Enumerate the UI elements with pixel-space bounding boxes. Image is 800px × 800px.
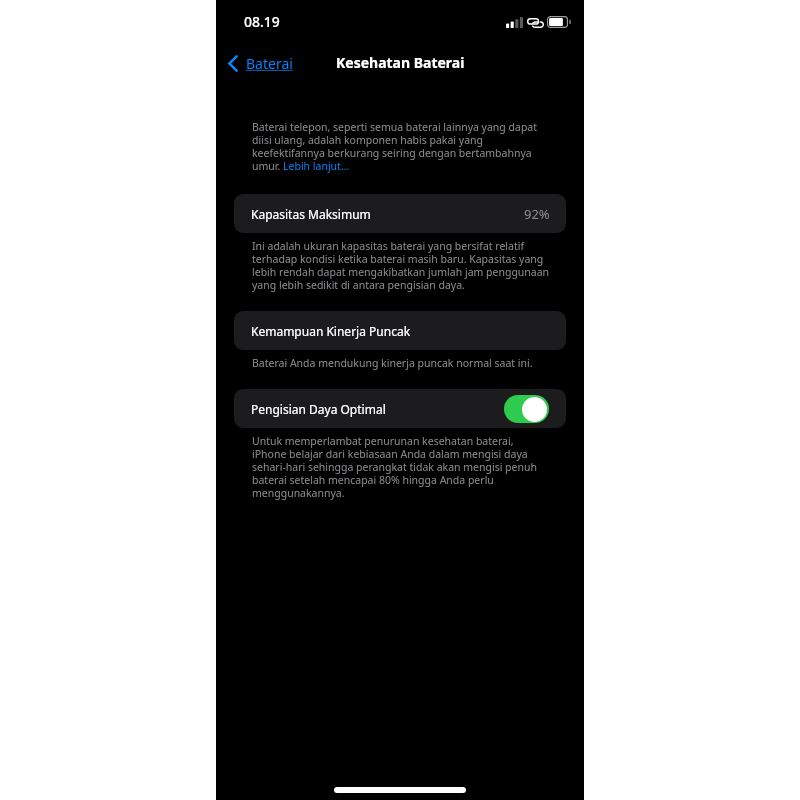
staticText: Untuk memperlambat penurunan kesehatan b… <box>252 434 550 500</box>
staticText: Baterai Anda mendukung kinerja puncak no… <box>252 356 550 370</box>
staticText: Pengisian Daya Optimal <box>251 401 386 417</box>
staticText: 08.19 <box>244 12 280 31</box>
staticText: Ini adalah ukuran kapasitas baterai yang… <box>252 239 550 292</box>
button[interactable]: Baterai <box>224 49 299 78</box>
other: Status: sinyal, tautan, baterai <box>506 16 572 28</box>
staticText: 92% <box>524 205 550 223</box>
staticText: Baterai telepon, seperti semua baterai l… <box>252 120 550 173</box>
staticText: Kemampuan Kinerja Puncak <box>251 323 411 339</box>
button[interactable]: Kemampuan Kinerja Puncak <box>234 311 566 350</box>
button[interactable]: Kapasitas Maksimum <box>234 194 566 233</box>
staticText: Kapasitas Maksimum <box>251 206 371 222</box>
button[interactable]: Pengisian Daya Optimal, aktif <box>504 395 549 423</box>
staticText: Kesehatan Baterai <box>336 53 465 72</box>
button[interactable]: Pengisian Daya Optimal <box>234 389 566 428</box>
staticText: Baterai <box>246 54 293 73</box>
